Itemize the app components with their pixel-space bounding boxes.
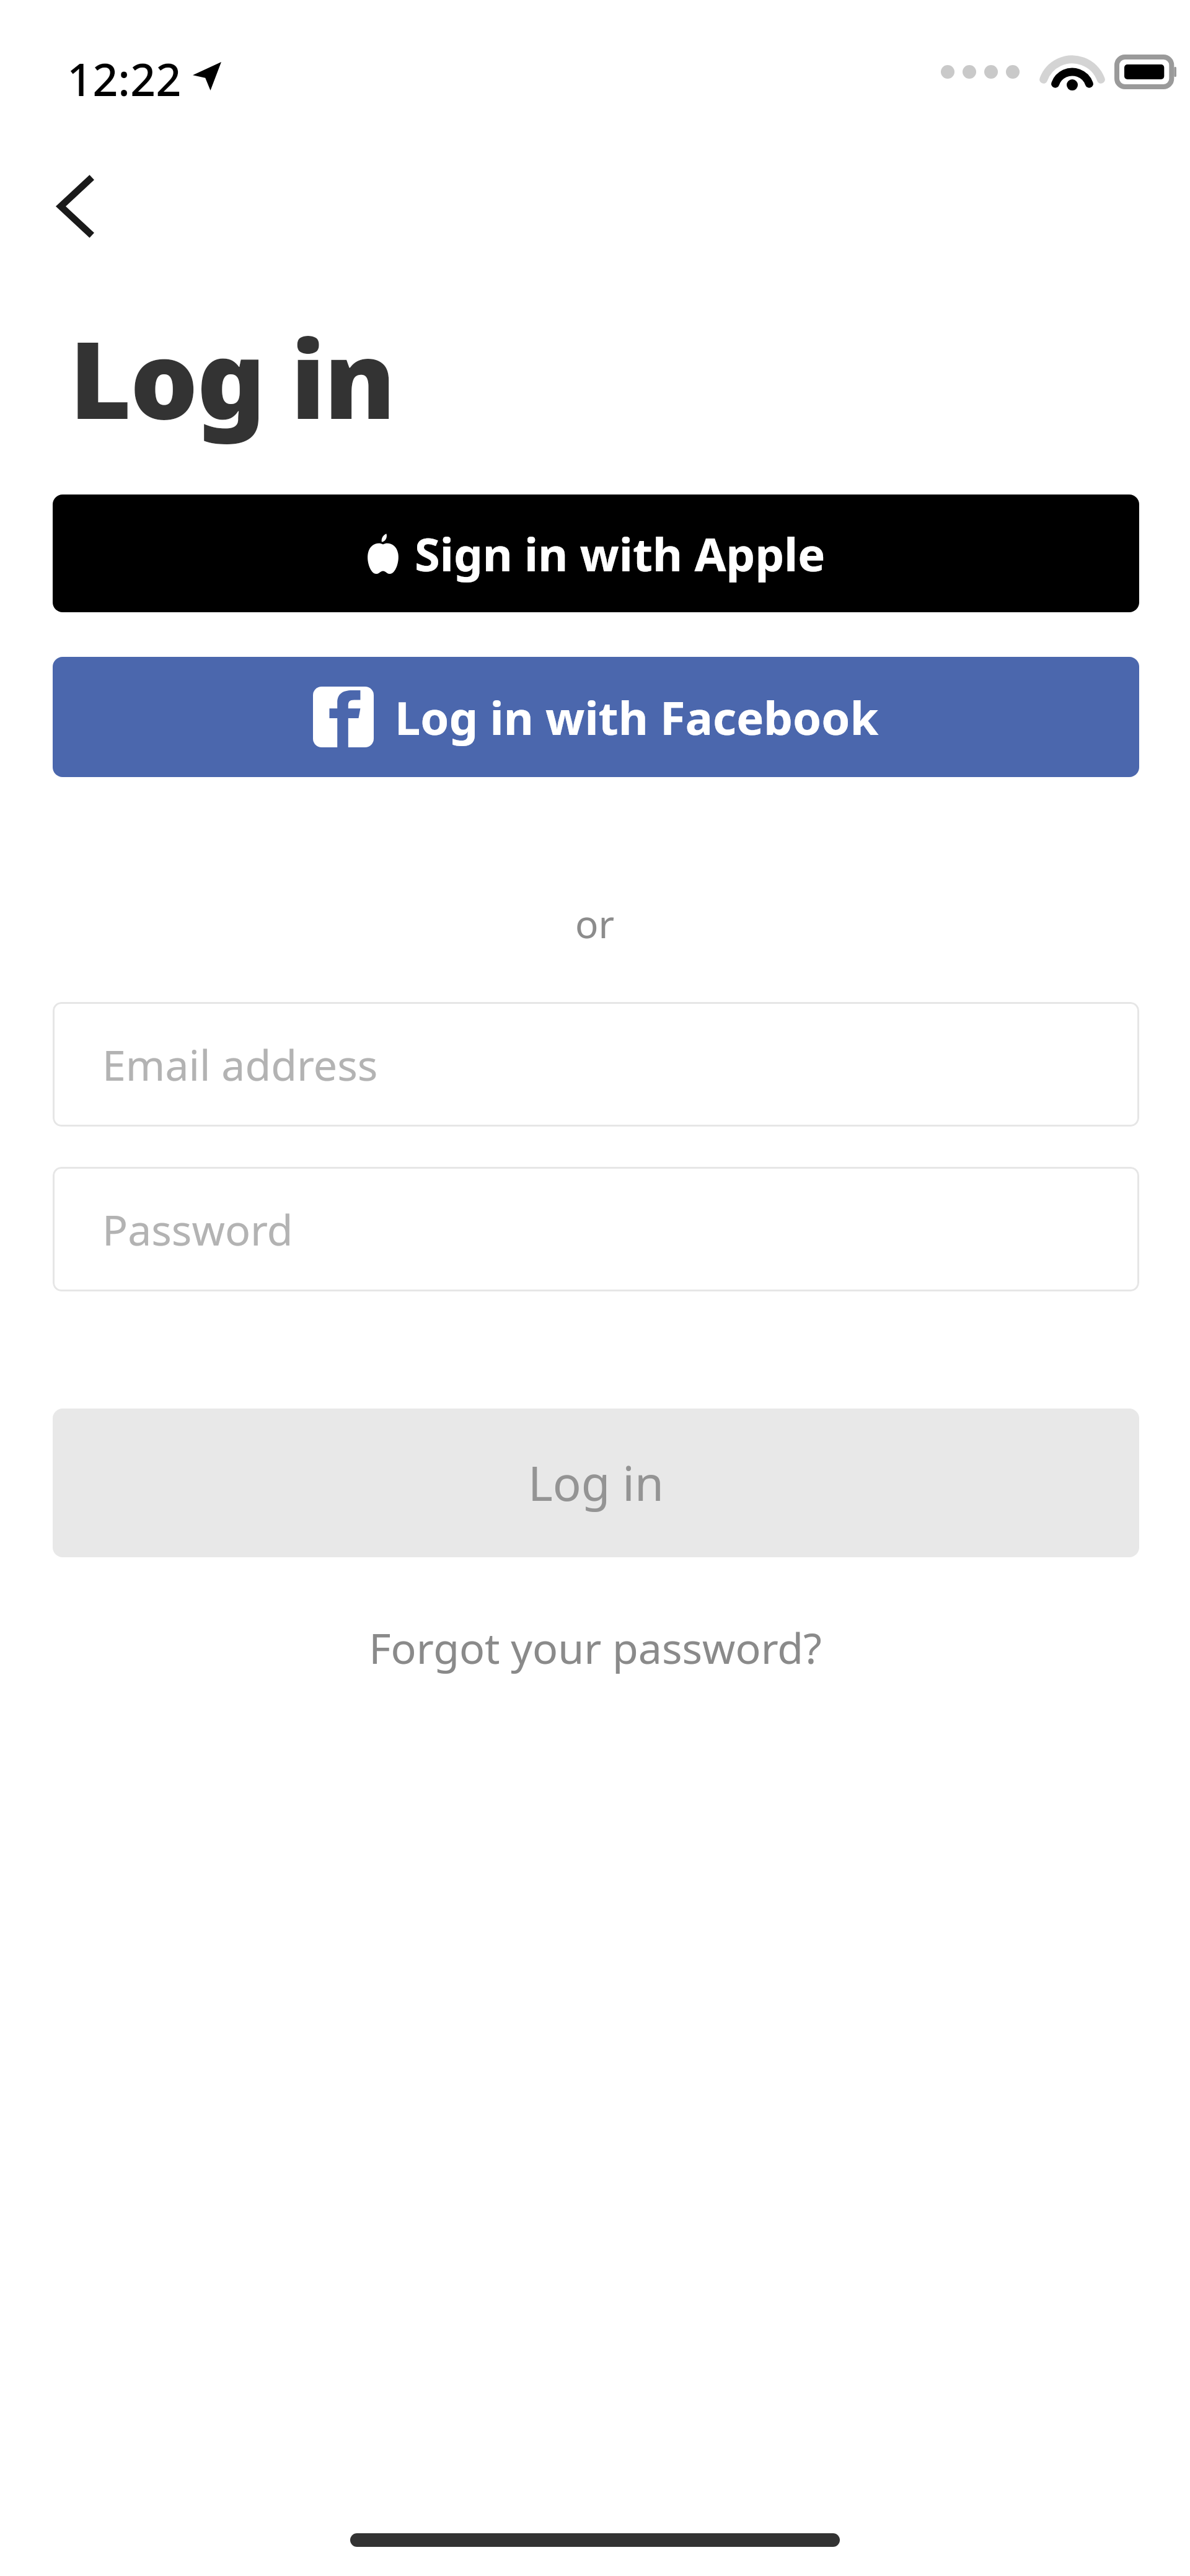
button[interactable]: Sign in with Apple — [53, 495, 1139, 612]
staticText: Password — [102, 1200, 293, 1258]
button[interactable]: Email address — [53, 1002, 1139, 1127]
staticText: Log in — [69, 305, 395, 450]
button[interactable]: Password — [53, 1167, 1139, 1291]
button[interactable]: Back — [37, 166, 118, 247]
staticText: Sign in with Apple — [415, 522, 826, 585]
staticText: Email address — [102, 1035, 378, 1093]
staticText: Log in with Facebook — [395, 686, 879, 749]
staticText: Log in — [528, 1451, 664, 1515]
button[interactable]: Forgot your password? — [0, 1610, 1190, 1684]
staticText: or — [575, 897, 615, 949]
staticText: Forgot your password? — [369, 1619, 822, 1676]
staticText: 12:22 — [67, 48, 182, 109]
button[interactable]: Log in with Facebook — [53, 657, 1139, 777]
button[interactable]: Log in — [53, 1409, 1139, 1557]
